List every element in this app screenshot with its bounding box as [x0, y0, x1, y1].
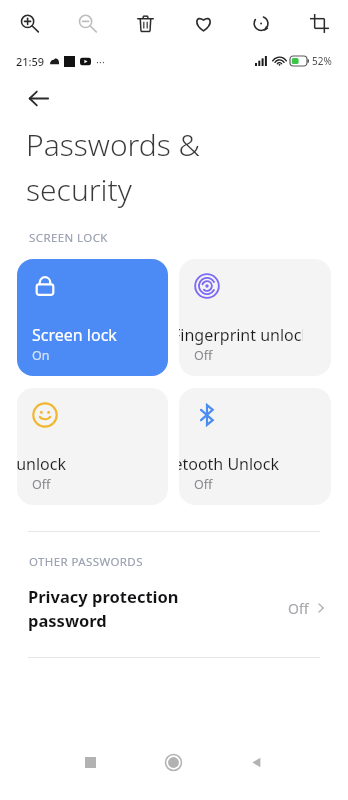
staticText: Off [194, 476, 213, 493]
staticText: Bluetooth Unlock [179, 453, 280, 475]
staticText: SCREEN LOCK [29, 230, 108, 246]
staticText: Off [32, 476, 51, 493]
button[interactable]: Screen lock [17, 259, 168, 376]
button[interactable]: Delete [116, 0, 174, 46]
button[interactable]: Zoom in [0, 0, 58, 46]
staticText: ··· [96, 54, 105, 69]
staticText: Off [288, 599, 309, 618]
staticText: 52% [312, 54, 332, 68]
button[interactable]: Face unlock [17, 388, 168, 505]
staticText: Face unlock [17, 453, 66, 475]
button[interactable]: Favorite [174, 0, 232, 46]
button[interactable]: Back [215, 724, 298, 800]
button[interactable]: Privacy protection [0, 585, 348, 631]
button[interactable]: Home [132, 724, 215, 800]
staticText: On [32, 347, 50, 364]
button[interactable]: Back [18, 78, 58, 118]
button[interactable]: Crop [290, 0, 348, 46]
staticText: Passwords & [26, 124, 201, 165]
staticText: Fingerprint unlock [179, 324, 303, 346]
staticText: Privacy protection [28, 585, 179, 607]
button[interactable]: Zoom out [58, 0, 116, 46]
staticText: security [26, 169, 132, 210]
button[interactable]: Rotate [232, 0, 290, 46]
button[interactable]: Recents [49, 724, 132, 800]
staticText: OTHER PASSWORDS [29, 554, 143, 570]
staticText: Screen lock [32, 324, 117, 346]
staticText: 21:59 [16, 54, 45, 69]
staticText: password [28, 609, 107, 631]
button[interactable]: Fingerprint unlock [179, 259, 331, 376]
button[interactable]: Bluetooth Unlock [179, 388, 331, 505]
staticText: Off [194, 347, 213, 364]
